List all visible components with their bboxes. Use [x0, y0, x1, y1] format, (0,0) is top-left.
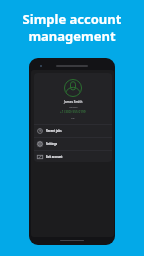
staticText: James Smith — [64, 100, 83, 104]
button[interactable]: Recent jobs — [34, 125, 112, 137]
other: Recent jobs — [37, 128, 43, 134]
button[interactable]: Settings — [34, 138, 112, 150]
staticText: Recent jobs — [46, 129, 62, 133]
staticText: Member — [69, 106, 78, 109]
other: Exit account — [37, 154, 43, 160]
staticText: Settings — [46, 142, 58, 146]
other: Settings — [37, 141, 43, 147]
staticText: +1 (300) 555 0199 — [60, 110, 86, 114]
staticText: Tier — [71, 117, 75, 120]
staticText: Simple account management — [0, 10, 144, 45]
button[interactable]: Exit account — [34, 151, 112, 162]
staticText: Exit account — [46, 155, 63, 159]
